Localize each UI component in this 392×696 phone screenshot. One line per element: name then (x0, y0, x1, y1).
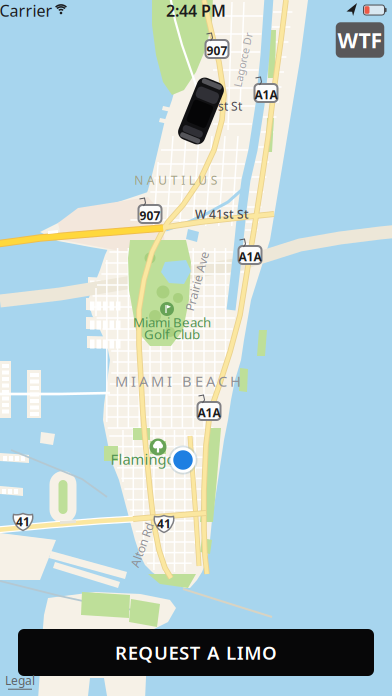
staticText: A1A (254, 86, 277, 102)
button[interactable]: Legal (5, 672, 35, 690)
staticText: Legal (5, 672, 35, 688)
staticText: REQUEST A LIMO (115, 640, 277, 665)
staticText: Carrier (0, 0, 52, 21)
staticText: WTF (337, 26, 382, 54)
staticText: Flamingo (110, 449, 175, 469)
staticText: 2:44 PM (166, 0, 226, 21)
staticText: Golf Club (144, 325, 200, 343)
staticText: 907 (139, 207, 160, 223)
staticText: Lagorce Dr (215, 53, 270, 67)
staticText: 907 (206, 42, 227, 58)
staticText: A1A (197, 404, 220, 420)
staticText: W 41st St (195, 206, 249, 222)
button[interactable]: REQUEST A LIMO (18, 629, 374, 676)
staticText: Miami Beach (133, 313, 211, 331)
button[interactable]: WTF (336, 22, 384, 58)
staticText: NAUTILUS (134, 172, 218, 188)
staticText: MIAMI BEACH (115, 371, 241, 391)
staticText: 41 (157, 515, 171, 531)
staticText: A1A (238, 248, 261, 264)
staticText: 41 (16, 513, 30, 529)
staticText: st St (218, 98, 242, 114)
staticText: Prairie Ave (166, 273, 227, 289)
staticText: Alton Rd (119, 537, 165, 553)
